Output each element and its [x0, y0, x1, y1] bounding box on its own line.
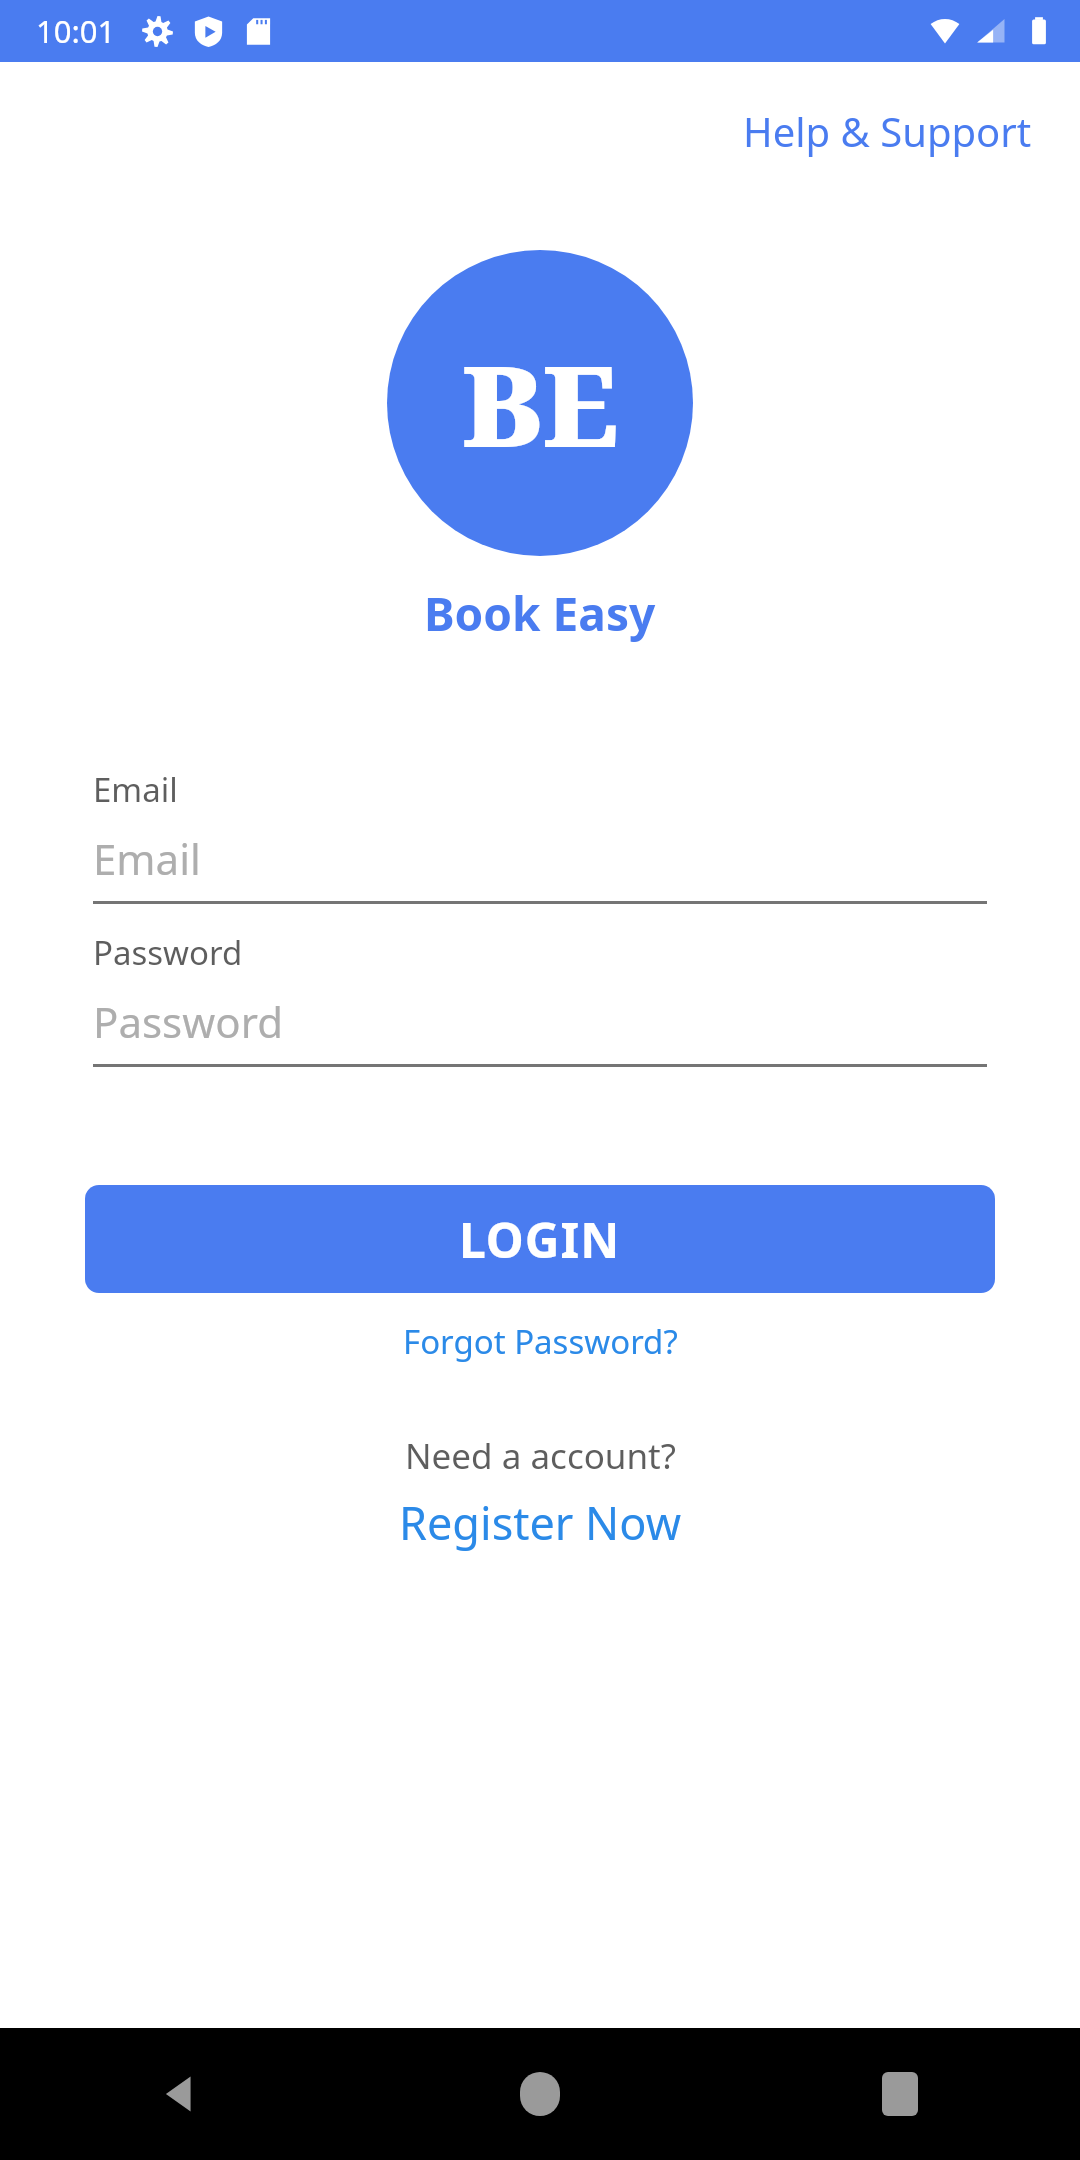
staticText: Email: [93, 767, 178, 812]
staticText: Forgot Password?: [403, 1319, 678, 1364]
staticText: Need a account?: [405, 1432, 676, 1480]
button[interactable]: Forgot Password?: [391, 1313, 690, 1370]
staticText: Register Now: [399, 1492, 682, 1553]
staticText: Password: [93, 930, 243, 975]
button[interactable]: Email: [93, 767, 987, 904]
staticText: LOGIN: [459, 1207, 621, 1272]
button[interactable]: Register Now: [387, 1488, 694, 1557]
staticText: Book Easy: [424, 582, 656, 645]
button[interactable]: Back: [120, 2034, 240, 2154]
staticText: Email: [93, 830, 201, 887]
button[interactable]: Home: [480, 2034, 600, 2154]
button[interactable]: Recent apps: [840, 2034, 960, 2154]
button[interactable]: Password: [93, 930, 987, 1067]
button[interactable]: Help & Support: [737, 98, 1038, 164]
staticText: BE: [462, 327, 619, 480]
staticText: 10:01: [36, 10, 116, 52]
staticText: Help & Support: [743, 104, 1032, 158]
staticText: Password: [93, 993, 283, 1050]
button[interactable]: LOGIN: [85, 1185, 995, 1293]
